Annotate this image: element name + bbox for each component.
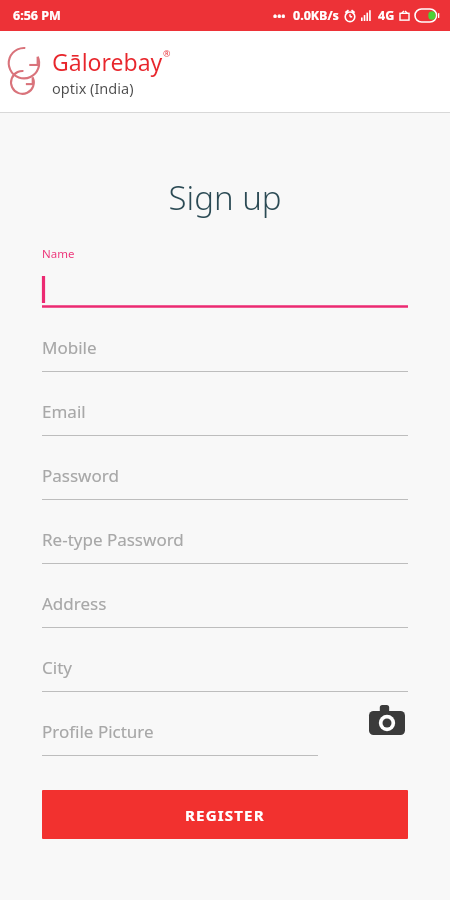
staticText: ® [163,47,171,59]
staticText: 4G [378,7,395,24]
button[interactable]: Password [42,436,408,500]
staticText: REGISTER [185,805,265,825]
staticText: 0.0KB/s [293,7,339,24]
staticText: Name [42,246,75,262]
button[interactable]: Take profile picture [366,699,408,741]
button[interactable]: Re-type Password [42,500,408,564]
staticText: Email [42,400,86,423]
button[interactable]: Address [42,564,408,628]
staticText: Address [42,592,107,615]
button[interactable]: Profile Picture [42,692,318,756]
button[interactable]: City [42,628,408,692]
staticText: 6:56 PM [13,7,61,24]
staticText: Re-type Password [42,528,184,551]
button[interactable]: Mobile [42,308,408,372]
staticText: City [42,656,72,679]
staticText: optix (India) [52,78,134,98]
staticText: Mobile [42,336,97,359]
staticText: Profile Picture [42,720,154,743]
button[interactable]: REGISTER [42,790,408,839]
staticText: Gālorebay [52,46,163,77]
button[interactable]: Email [42,372,408,436]
staticText: Password [42,464,119,487]
staticText: Sign up [0,175,450,220]
staticText: ••• [273,8,286,23]
button[interactable]: Name [42,244,408,308]
